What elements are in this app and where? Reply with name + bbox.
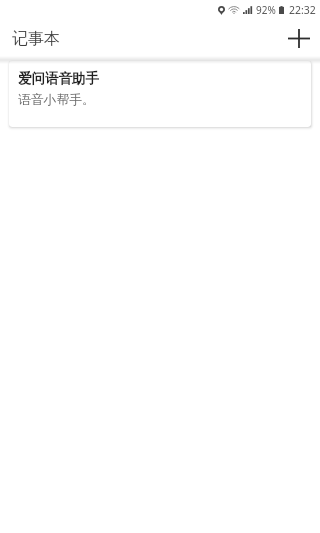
staticText: 记事本: [12, 29, 60, 49]
staticText: 爱问语音助手: [18, 70, 99, 87]
staticText: 22:32: [289, 3, 316, 17]
button[interactable]: 爱问语音助手: [9, 61, 311, 127]
staticText: 92%: [256, 3, 276, 17]
staticText: 语音小帮手。: [18, 92, 95, 108]
button[interactable]: Add note: [279, 19, 319, 57]
